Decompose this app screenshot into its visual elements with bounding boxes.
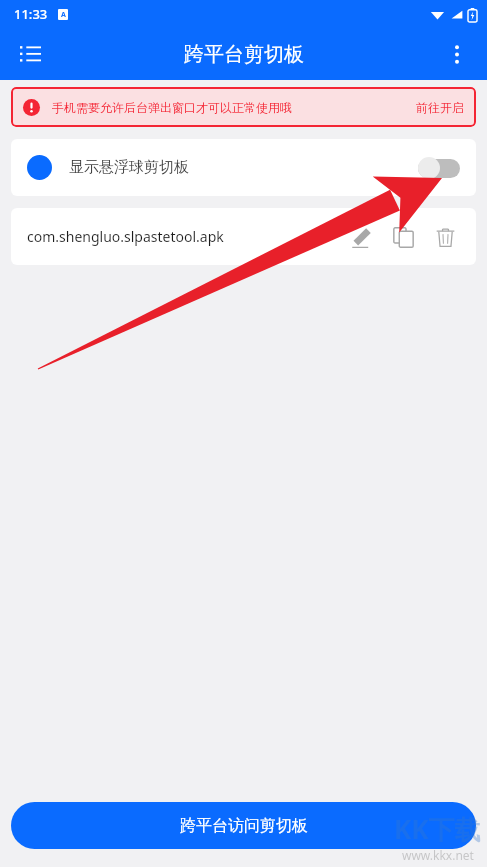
button[interactable]: Menu [6,30,54,78]
button[interactable]: More options [433,30,481,78]
button[interactable]: 手机需要允许后台弹出窗口才可以正常使用哦 [11,87,476,127]
staticText: 手机需要允许后台弹出窗口才可以正常使用哦 [52,100,292,115]
button[interactable]: com.shengluo.slpastetool.apk [11,208,476,265]
staticText: KK下载 [394,811,481,847]
button[interactable]: Edit [340,216,382,258]
button[interactable]: Delete [424,216,466,258]
staticText: com.shengluo.slpastetool.apk [27,227,224,246]
button[interactable]: Copy [382,216,424,258]
staticText: 11:33 [14,5,48,23]
staticText: 跨平台剪切板 [184,42,304,67]
staticText: www.kkx.net [402,847,474,863]
staticText: A [61,10,66,20]
staticText: 显示悬浮球剪切板 [69,158,189,177]
button[interactable]: 显示悬浮球剪切板 [11,139,476,196]
staticText: 跨平台访问剪切板 [180,816,308,836]
button[interactable]: 前往开启 [416,100,464,115]
button[interactable]: 跨平台访问剪切板 [11,802,476,849]
button[interactable]: Toggle floating clipboard [418,157,460,179]
